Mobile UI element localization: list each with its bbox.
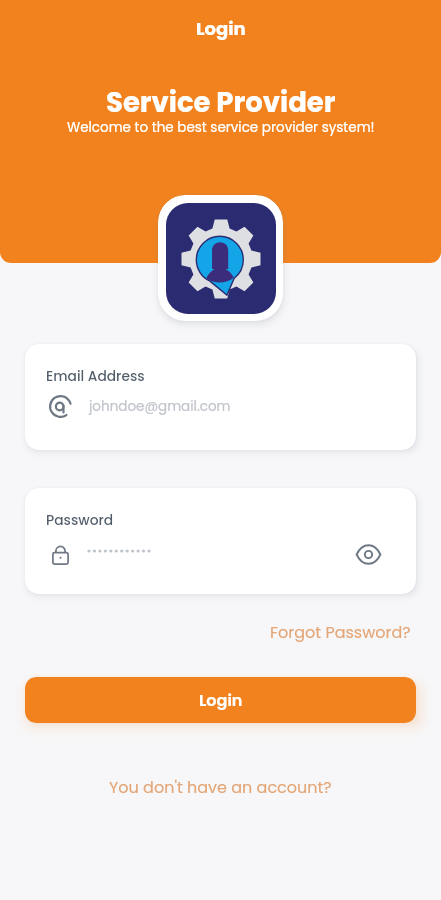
button[interactable]: Password [25,488,416,594]
staticText: Forgot Password? [270,621,411,643]
staticText: You don't have an account? [109,776,332,798]
button[interactable]: Email Address [25,344,416,450]
staticText: Email Address [46,367,145,386]
button[interactable]: You don't have an account? [105,773,336,801]
button[interactable]: Show password [353,539,384,570]
staticText: Login [196,16,246,41]
staticText: Service Provider [106,83,336,121]
staticText: Login [199,689,243,711]
button[interactable]: Forgot Password? [267,618,414,646]
staticText: Welcome to the best service provider sys… [67,118,375,137]
button[interactable]: Login [25,677,416,723]
staticText: johndoe@gmail.com [89,397,231,416]
staticText: Password [46,511,114,530]
